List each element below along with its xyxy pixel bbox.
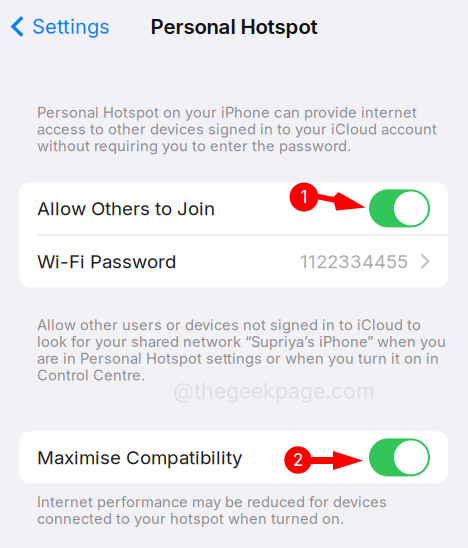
staticText: Wi-Fi Password: [37, 250, 176, 273]
staticText: Personal Hotspot: [150, 14, 317, 39]
staticText: Internet performance may be reduced for …: [37, 493, 387, 511]
staticText: @thegeekpage.com: [173, 378, 375, 404]
staticText: Personal Hotspot on your iPhone can prov…: [37, 103, 417, 121]
staticText: look for your shared network “Supriya’s …: [37, 333, 446, 350]
staticText: 1122334455: [300, 250, 408, 273]
staticText: Maximise Compatibility: [37, 446, 242, 469]
button[interactable]: Settings: [0, 6, 117, 47]
staticText: without requiring you to enter the passw…: [37, 137, 351, 155]
staticText: Allow Others to Join: [37, 197, 215, 220]
staticText: access to other devices signed in to you…: [37, 120, 437, 138]
button[interactable]: Wi-Fi Password: [19, 235, 448, 287]
staticText: Control Centre.: [37, 366, 145, 384]
staticText: Settings: [32, 14, 109, 39]
staticText: are in Personal Hotspot settings or when…: [37, 349, 439, 367]
staticText: 1: [300, 187, 307, 207]
button[interactable]: Maximise Compatibility: [19, 431, 448, 483]
staticText: 2: [293, 450, 303, 470]
staticText: connected to your hotspot when turned on…: [37, 510, 344, 527]
staticText: Allow other users or devices not signed …: [37, 316, 421, 334]
button[interactable]: Allow Others to Join: [19, 182, 448, 234]
